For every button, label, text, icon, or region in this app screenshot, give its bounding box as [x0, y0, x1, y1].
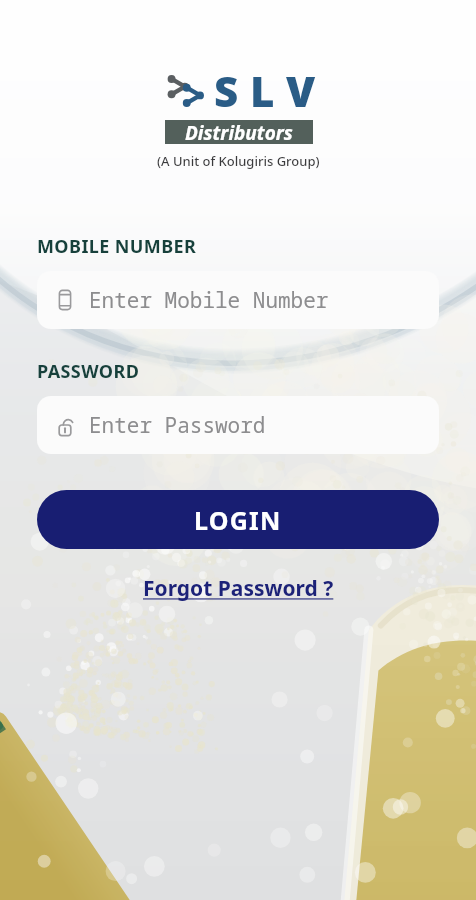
staticText: Enter Password [89, 411, 266, 440]
staticText: V [286, 62, 316, 119]
staticText: Distributors [185, 120, 293, 144]
staticText: PASSWORD [37, 359, 140, 384]
staticText: Enter Mobile Number [89, 286, 329, 315]
button[interactable]: Forgot Password ? [137, 571, 340, 606]
staticText: Forgot Password ? [143, 574, 334, 603]
staticText: S [214, 62, 239, 119]
button[interactable]: Mobile number field [37, 271, 439, 329]
staticText: (A Unit of Kolugiris Group) [157, 152, 320, 170]
staticText: L [250, 62, 275, 119]
staticText: MOBILE NUMBER [37, 234, 197, 259]
staticText: LOGIN [194, 503, 282, 537]
button[interactable]: LOGIN [37, 490, 439, 549]
button[interactable]: Password field [37, 396, 439, 454]
